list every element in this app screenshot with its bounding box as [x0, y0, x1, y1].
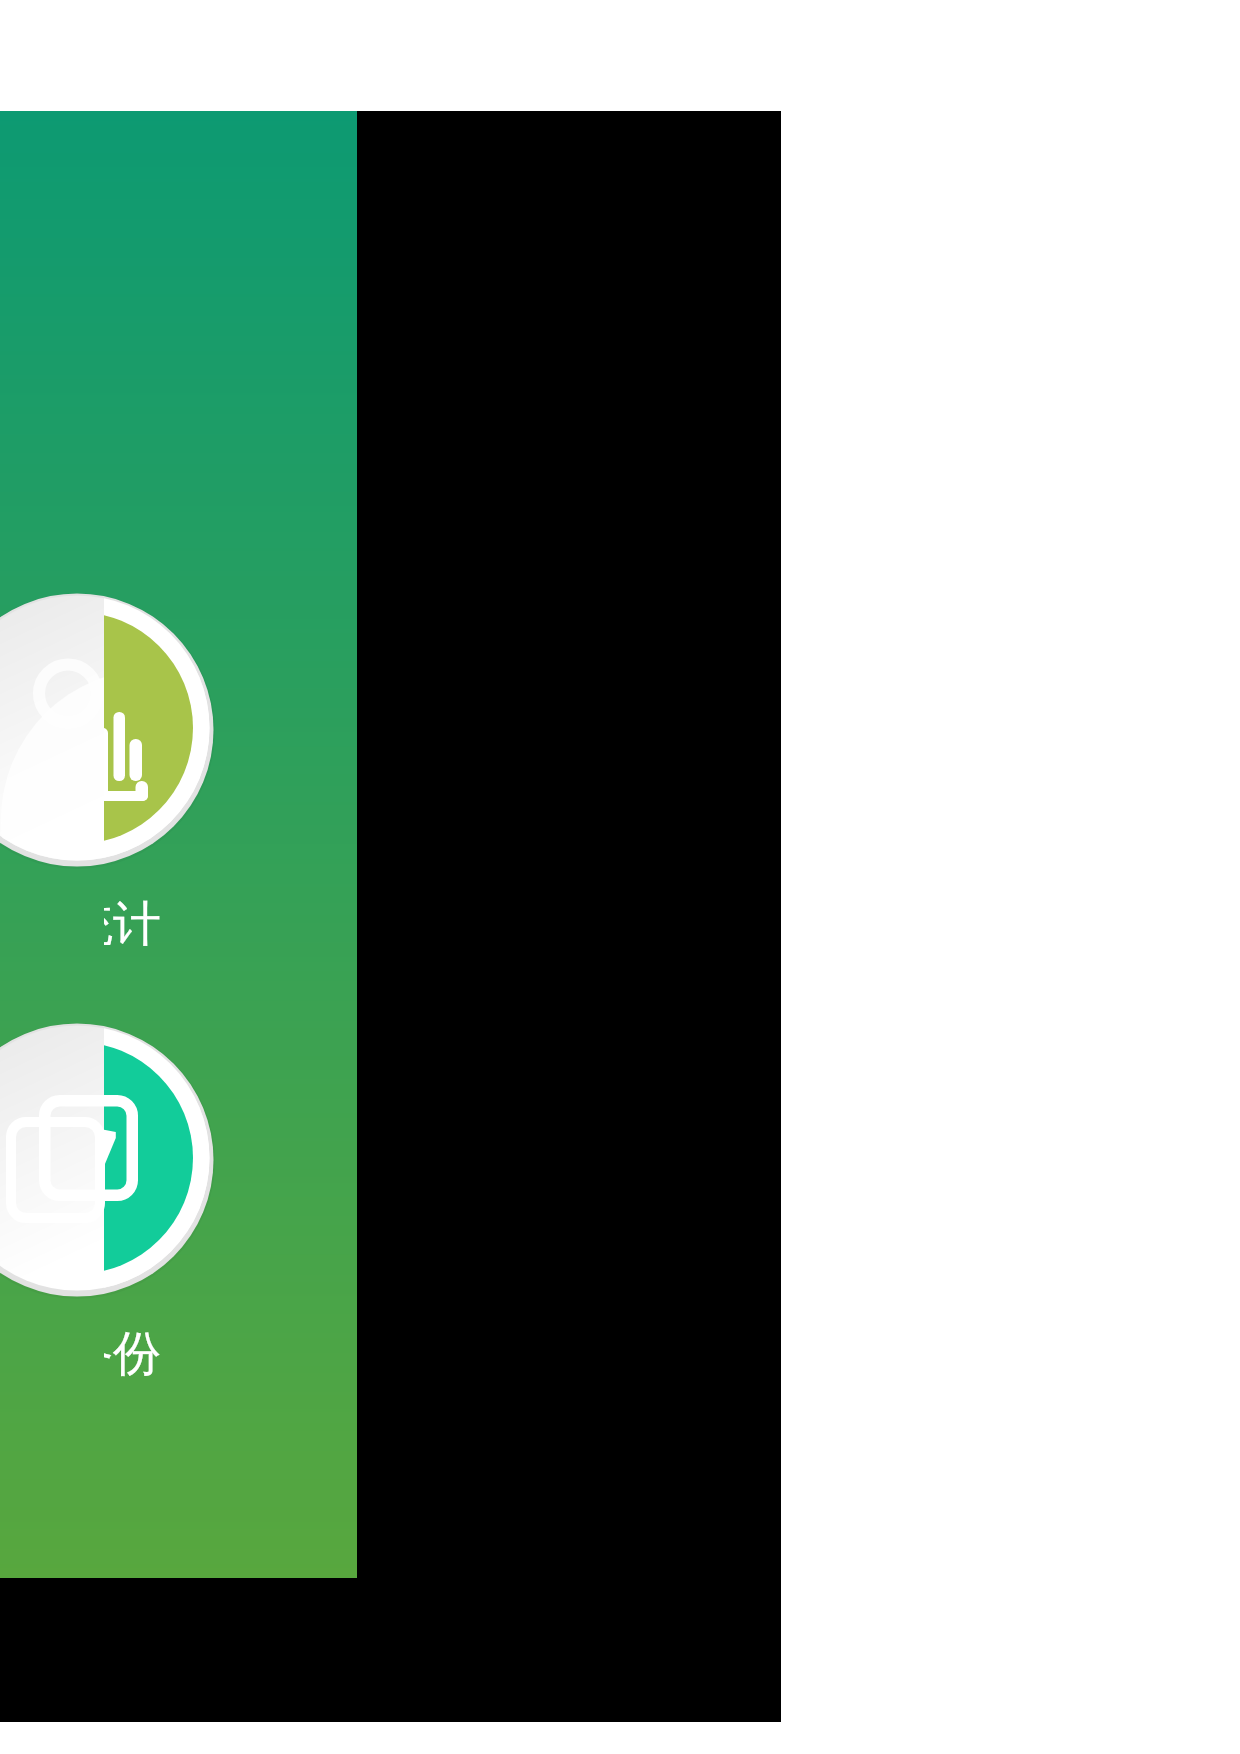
button[interactable]: 备份 — [0, 998, 357, 1418]
staticText: 统计 — [104, 894, 161, 954]
staticText: 备份 — [104, 1324, 161, 1384]
button[interactable]: 统计 — [0, 568, 357, 988]
